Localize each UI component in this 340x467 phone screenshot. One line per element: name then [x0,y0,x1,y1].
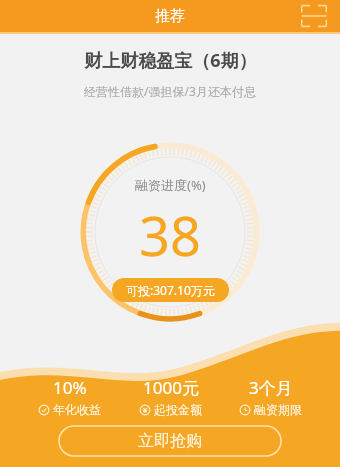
staticText: 起投金额 [154,402,202,417]
staticText: 年化收益 [53,402,101,417]
staticText: 融资期限 [254,402,302,417]
staticText: 10% [53,376,87,399]
staticText: 财上财稳盈宝（6期） [84,48,257,73]
staticText: 38 [139,198,201,272]
staticText: 推荐 [155,7,185,26]
button[interactable]: Scan [300,3,328,29]
staticText: 立即抢购 [138,431,202,451]
staticText: 经营性借款/强担保/3月还本付息 [84,83,256,99]
button[interactable]: 立即抢购 [58,425,282,457]
staticText: 1000元 [143,376,199,399]
button[interactable]: 可投:307.10万元 [112,278,229,302]
staticText: 3个月 [249,376,293,399]
staticText: 融资进度(%) [135,176,206,194]
staticText: 可投:307.10万元 [126,282,215,298]
